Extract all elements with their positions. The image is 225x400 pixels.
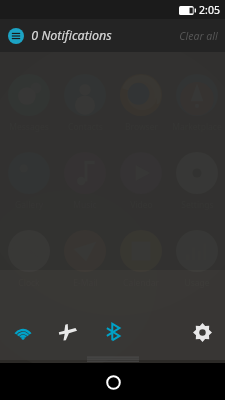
button[interactable]: Wi-Fi — [0, 309, 45, 355]
button[interactable]: Home — [99, 368, 127, 396]
button[interactable]: Airplane mode — [45, 309, 90, 355]
button[interactable]: 0 Notifications — [8, 27, 112, 44]
button[interactable]: Bluetooth — [90, 309, 135, 355]
staticText: 2:05 — [199, 3, 220, 17]
button[interactable]: Settings — [180, 309, 225, 355]
button[interactable]: Clear all — [179, 29, 218, 43]
button[interactable]: Calendar — [113, 230, 169, 289]
staticText: Clear all — [179, 29, 218, 43]
staticText: 0 Notifications — [31, 27, 112, 44]
